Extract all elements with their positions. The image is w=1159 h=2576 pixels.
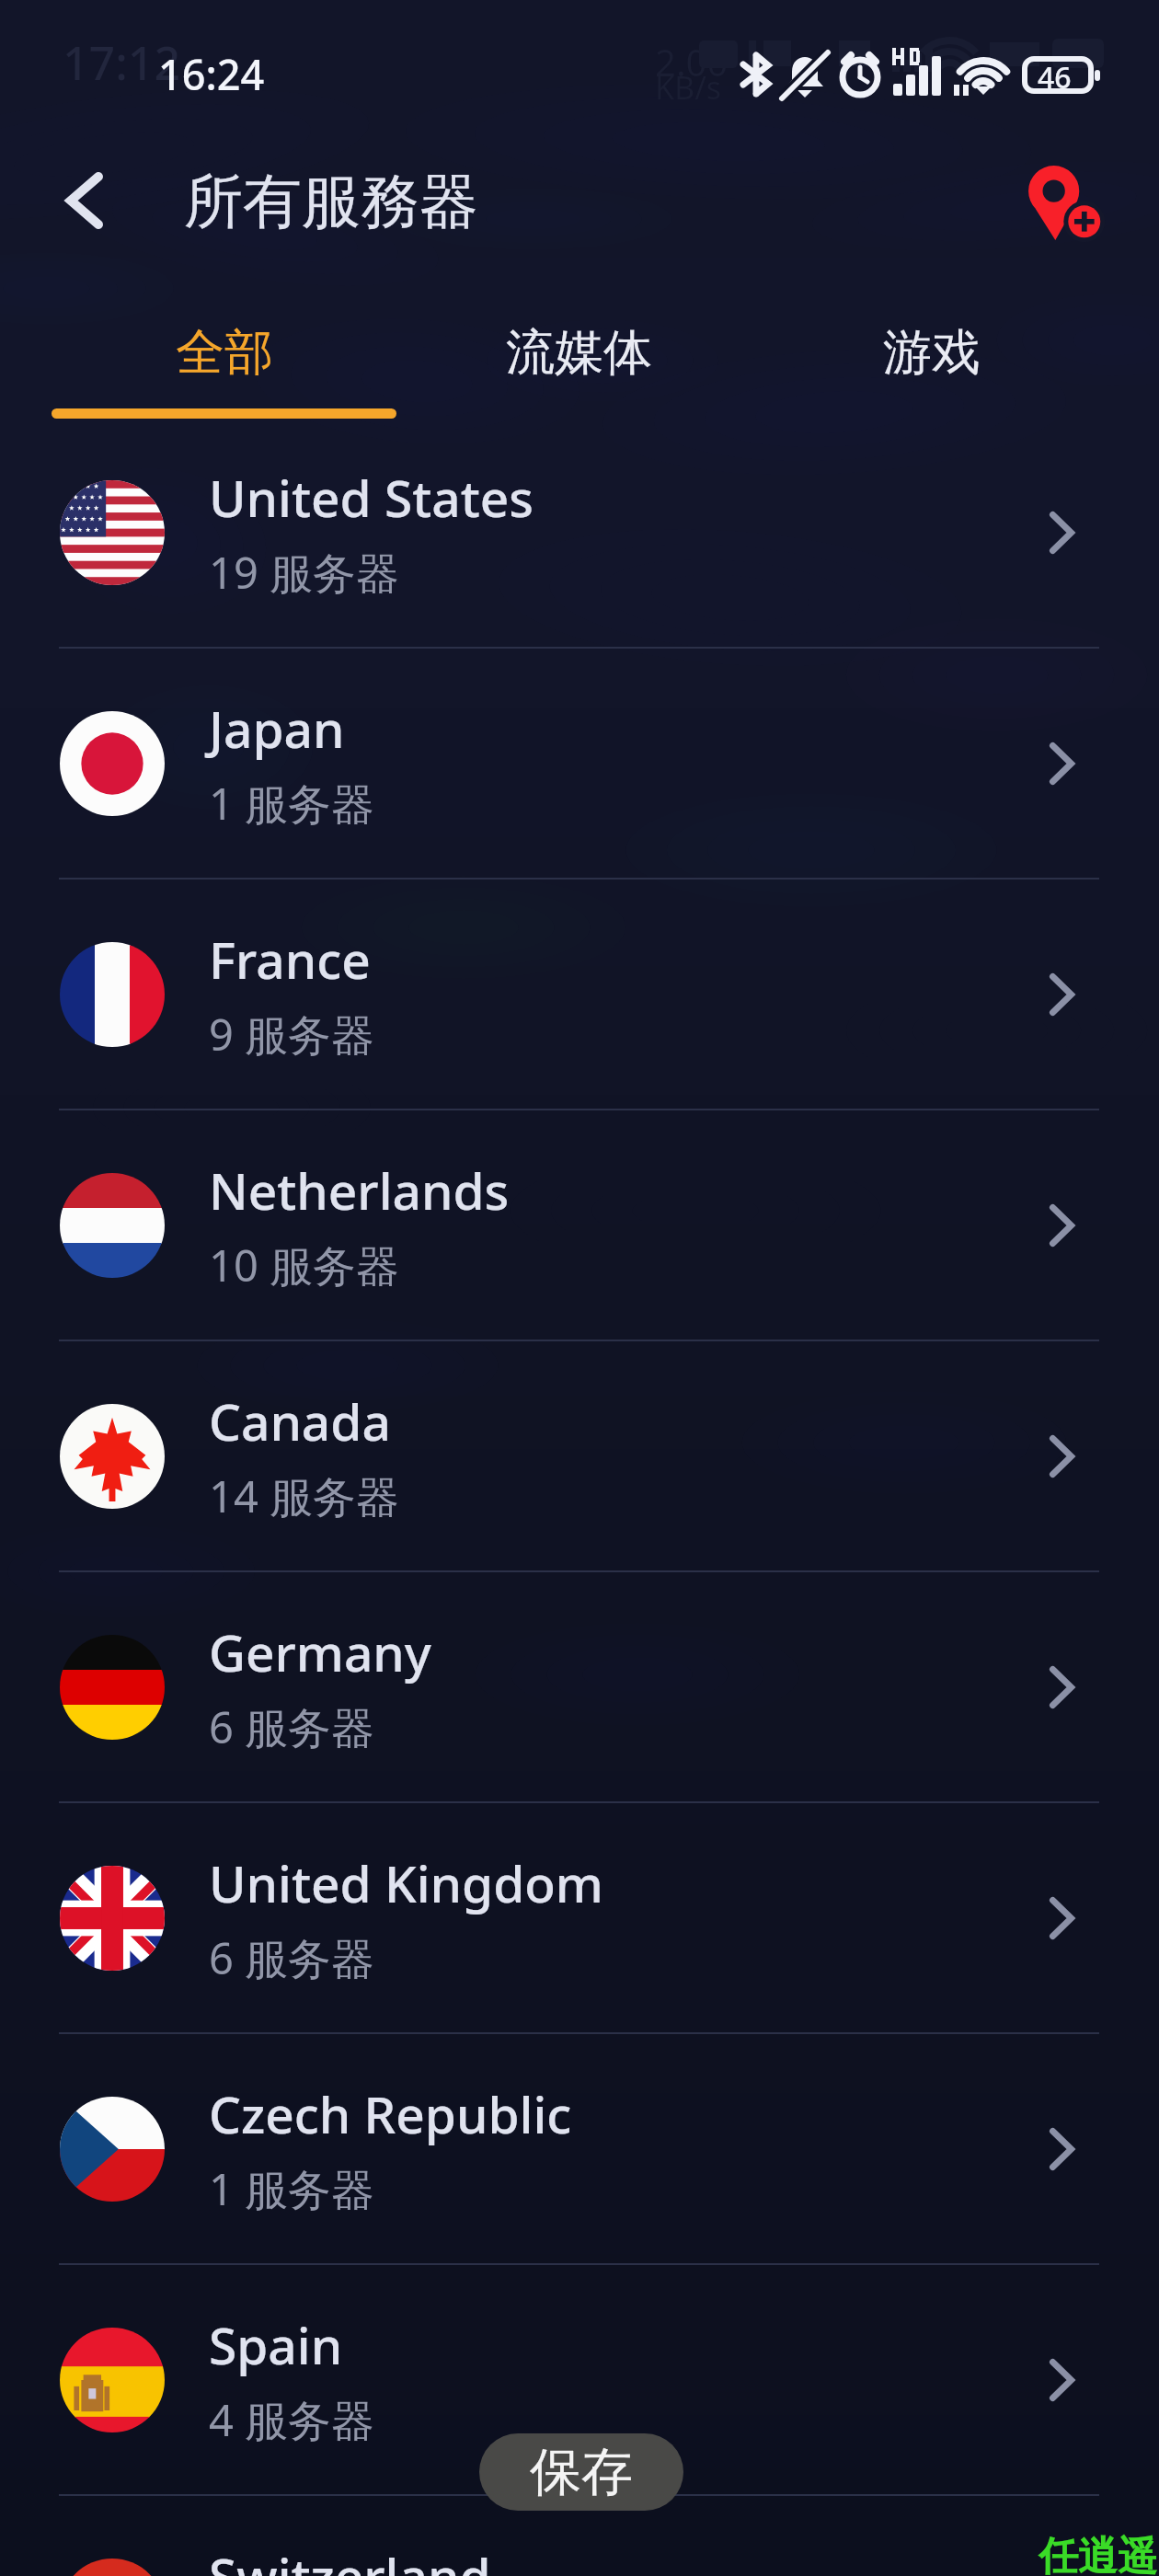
staticText: Germany (209, 1617, 431, 1686)
staticText: United States (209, 463, 534, 532)
staticText: Canada (209, 1386, 391, 1455)
staticText: Switzerland (209, 2541, 491, 2576)
staticText: 流媒体 (506, 322, 652, 384)
button[interactable]: France (0, 880, 1159, 1109)
staticText: KB/s (655, 66, 722, 109)
staticText: 16:24 (158, 46, 265, 102)
staticText: Spain (209, 2310, 343, 2379)
staticText: 14 服务器 (209, 1466, 399, 1525)
button[interactable]: Czech Republic (0, 2034, 1159, 2263)
staticText: 游戏 (883, 322, 981, 384)
button[interactable]: Germany (0, 1572, 1159, 1801)
staticText: Japan (209, 694, 345, 763)
button[interactable]: United Kingdom (0, 1803, 1159, 2032)
button[interactable]: Canada (0, 1341, 1159, 1570)
staticText: 6 服务器 (209, 1697, 375, 1756)
staticText: France (209, 925, 371, 994)
staticText: 1 服务器 (209, 2159, 375, 2218)
staticText: Czech Republic (209, 2079, 572, 2148)
staticText: 1 服务器 (209, 774, 375, 833)
button[interactable]: 游戏 (758, 265, 1106, 418)
button[interactable]: Spain (0, 2265, 1159, 2494)
staticText: 10 服务器 (209, 1236, 399, 1294)
staticText: 17:12 (63, 31, 180, 94)
button[interactable]: 全部 (52, 265, 396, 418)
staticText: 全部 (176, 322, 273, 384)
staticText: 所有服務器 (184, 165, 478, 239)
button[interactable]: Netherlands (0, 1110, 1159, 1340)
staticText: Netherlands (209, 1156, 510, 1225)
button[interactable]: Switzerland (0, 2496, 1159, 2576)
staticText: 19 服务器 (209, 543, 399, 602)
staticText: 9 服务器 (209, 1005, 375, 1064)
staticText: 4 服务器 (209, 2390, 375, 2449)
button[interactable]: 流媒体 (405, 265, 752, 418)
staticText: 保存 (530, 2440, 633, 2505)
staticText: United Kingdom (209, 1848, 603, 1917)
button[interactable]: Back (40, 156, 129, 245)
staticText: 6 服务器 (209, 1928, 375, 1987)
button[interactable]: United States (0, 418, 1159, 647)
staticText: 46 (1038, 57, 1072, 98)
staticText: 2.00 (655, 37, 729, 86)
button[interactable]: Add server location (1018, 155, 1114, 251)
button[interactable]: Japan (0, 649, 1159, 878)
staticText: 任逍遥 (1039, 2532, 1157, 2576)
